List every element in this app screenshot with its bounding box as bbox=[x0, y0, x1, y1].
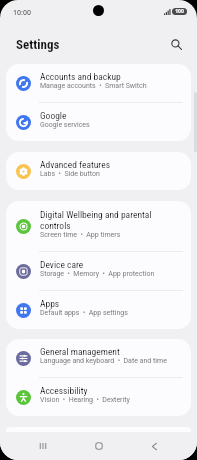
staticText: Labs • Side button bbox=[40, 170, 100, 178]
staticText: Digital Wellbeing and parental controls bbox=[40, 209, 183, 231]
staticText: Language and keyboard • Date and time bbox=[40, 357, 167, 365]
staticText: Settings bbox=[16, 37, 60, 52]
staticText: Apps bbox=[40, 298, 60, 309]
staticText: 10:00 bbox=[13, 8, 31, 18]
staticText: Accessibility bbox=[40, 385, 88, 396]
button[interactable]: Back bbox=[144, 432, 164, 460]
staticText: 100 bbox=[175, 8, 184, 15]
button[interactable]: Home bbox=[89, 432, 109, 460]
staticText: Vision • Hearing • Dexterity bbox=[40, 396, 130, 404]
button[interactable]: Accessibility bbox=[6, 378, 191, 416]
button[interactable]: Accounts and backup bbox=[6, 64, 191, 102]
button[interactable]: Google bbox=[6, 103, 191, 141]
button[interactable]: General management bbox=[6, 339, 191, 377]
staticText: Screen time • App timers bbox=[40, 231, 121, 239]
button[interactable]: Search bbox=[165, 33, 187, 55]
staticText: Device care bbox=[40, 259, 84, 270]
staticText: General management bbox=[40, 346, 120, 357]
staticText: Google services bbox=[40, 121, 90, 129]
staticText: Manage accounts • Smart Switch bbox=[40, 82, 147, 90]
button[interactable]: Recent apps bbox=[33, 432, 53, 460]
staticText: Google bbox=[40, 110, 67, 121]
button[interactable]: Advanced features bbox=[6, 152, 191, 190]
staticText: Storage • Memory • App protection bbox=[40, 270, 155, 278]
staticText: Advanced features bbox=[40, 159, 110, 170]
staticText: Accounts and backup bbox=[40, 71, 121, 82]
button[interactable]: Device care bbox=[6, 252, 191, 290]
button[interactable]: Apps bbox=[6, 291, 191, 329]
staticText: Default apps • App settings bbox=[40, 309, 128, 317]
button[interactable]: Digital Wellbeing and parental controls bbox=[6, 201, 191, 251]
